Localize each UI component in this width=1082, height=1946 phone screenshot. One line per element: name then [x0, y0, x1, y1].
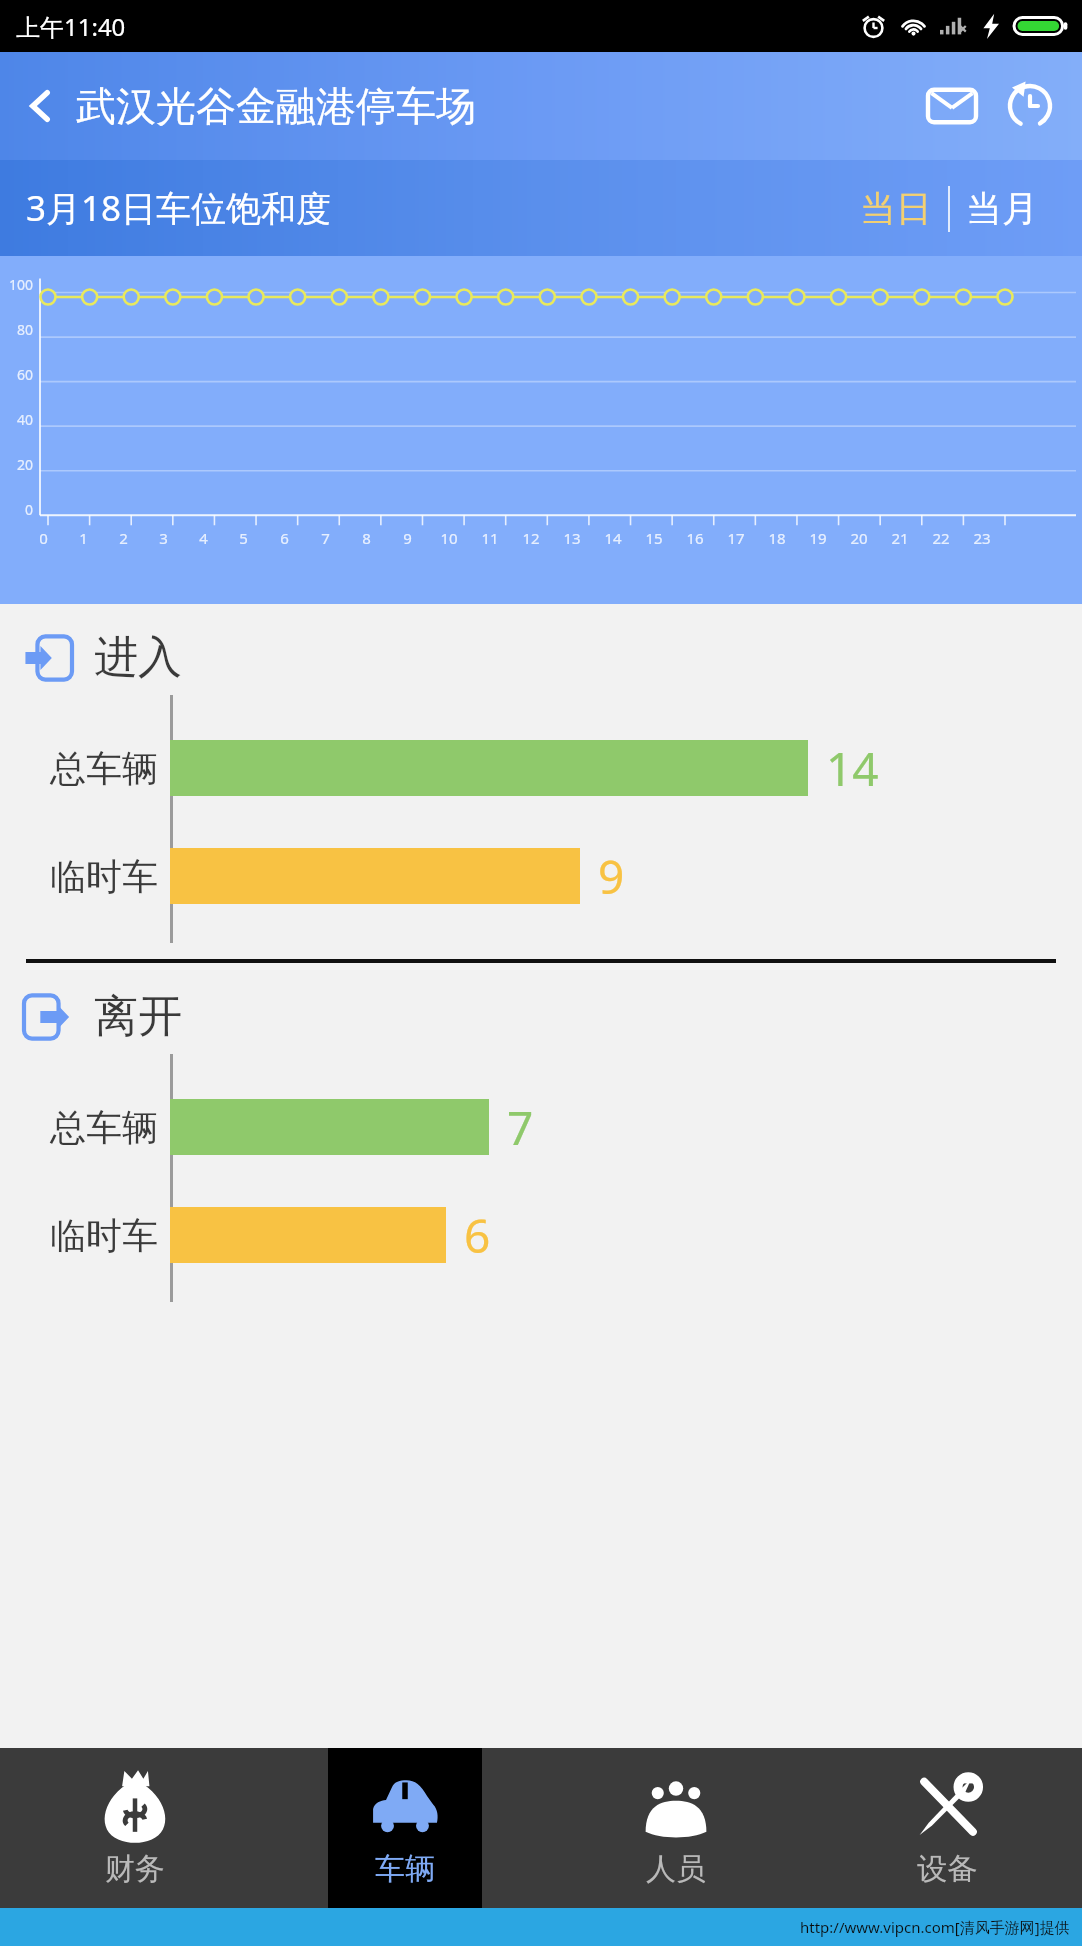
staticText: 17 [727, 528, 745, 548]
staticText: 总车辆 [50, 1105, 158, 1150]
staticText: 100 [9, 275, 34, 294]
staticText: 6 [280, 528, 289, 548]
staticText: 2 [119, 528, 128, 548]
staticText: 60 [17, 365, 34, 384]
other: Leave [24, 993, 72, 1041]
staticText: 12 [522, 528, 540, 548]
staticText: 3 [159, 528, 168, 548]
staticText: 当月 [966, 186, 1038, 231]
staticText: 1 [79, 528, 88, 548]
staticText: 车辆 [375, 1850, 435, 1888]
button[interactable]: 车辆 [328, 1748, 482, 1908]
staticText: 0 [25, 500, 34, 519]
staticText: 9 [598, 845, 625, 907]
staticText: 9 [403, 528, 412, 548]
button[interactable]: Back [12, 78, 68, 134]
staticText: 3月18日车位饱和度 [26, 184, 332, 232]
staticText: 80 [17, 320, 34, 339]
button[interactable]: 当日 [844, 178, 948, 239]
staticText: 6 [464, 1204, 491, 1266]
staticText: 上午11:40 [16, 10, 126, 43]
staticText: 当日 [860, 186, 932, 231]
staticText: 5 [239, 528, 248, 548]
staticText: 14 [826, 737, 879, 799]
staticText: 8 [362, 528, 371, 548]
staticText: 11 [481, 528, 499, 548]
staticText: 14 [604, 528, 622, 548]
staticText: 临时车 [50, 1213, 158, 1258]
button[interactable]: History [998, 74, 1062, 138]
staticText: 21 [891, 528, 909, 548]
staticText: http://www.vipcn.com[清风手游网]提供 [800, 1917, 1070, 1937]
staticText: 16 [686, 528, 704, 548]
staticText: 0 [39, 528, 48, 548]
staticText: 临时车 [50, 854, 158, 899]
staticText: 武汉光谷金融港停车场 [76, 81, 476, 131]
staticText: 18 [768, 528, 786, 548]
staticText: 40 [17, 410, 34, 429]
button[interactable]: 当月 [950, 178, 1054, 239]
staticText: 22 [932, 528, 950, 548]
staticText: 财务 [105, 1850, 165, 1888]
button[interactable]: 设备 [870, 1748, 1024, 1908]
other: Enter [24, 634, 72, 682]
staticText: 10 [440, 528, 458, 548]
staticText: 设备 [917, 1850, 977, 1888]
staticText: 20 [850, 528, 868, 548]
staticText: 20 [17, 455, 34, 474]
staticText: 15 [645, 528, 663, 548]
staticText: 7 [321, 528, 330, 548]
staticText: 进入 [94, 630, 182, 685]
staticText: 7 [507, 1096, 534, 1158]
staticText: 19 [809, 528, 827, 548]
button[interactable]: Leave [24, 989, 1082, 1044]
staticText: 23 [973, 528, 991, 548]
staticText: 人员 [646, 1850, 706, 1888]
staticText: 13 [563, 528, 581, 548]
button[interactable]: 人员 [599, 1748, 753, 1908]
button[interactable]: 财务 [58, 1748, 212, 1908]
button[interactable]: Messages [920, 74, 984, 138]
staticText: 4 [199, 528, 208, 548]
button[interactable]: Enter [24, 630, 1082, 685]
staticText: 总车辆 [50, 746, 158, 791]
staticText: 离开 [94, 989, 182, 1044]
